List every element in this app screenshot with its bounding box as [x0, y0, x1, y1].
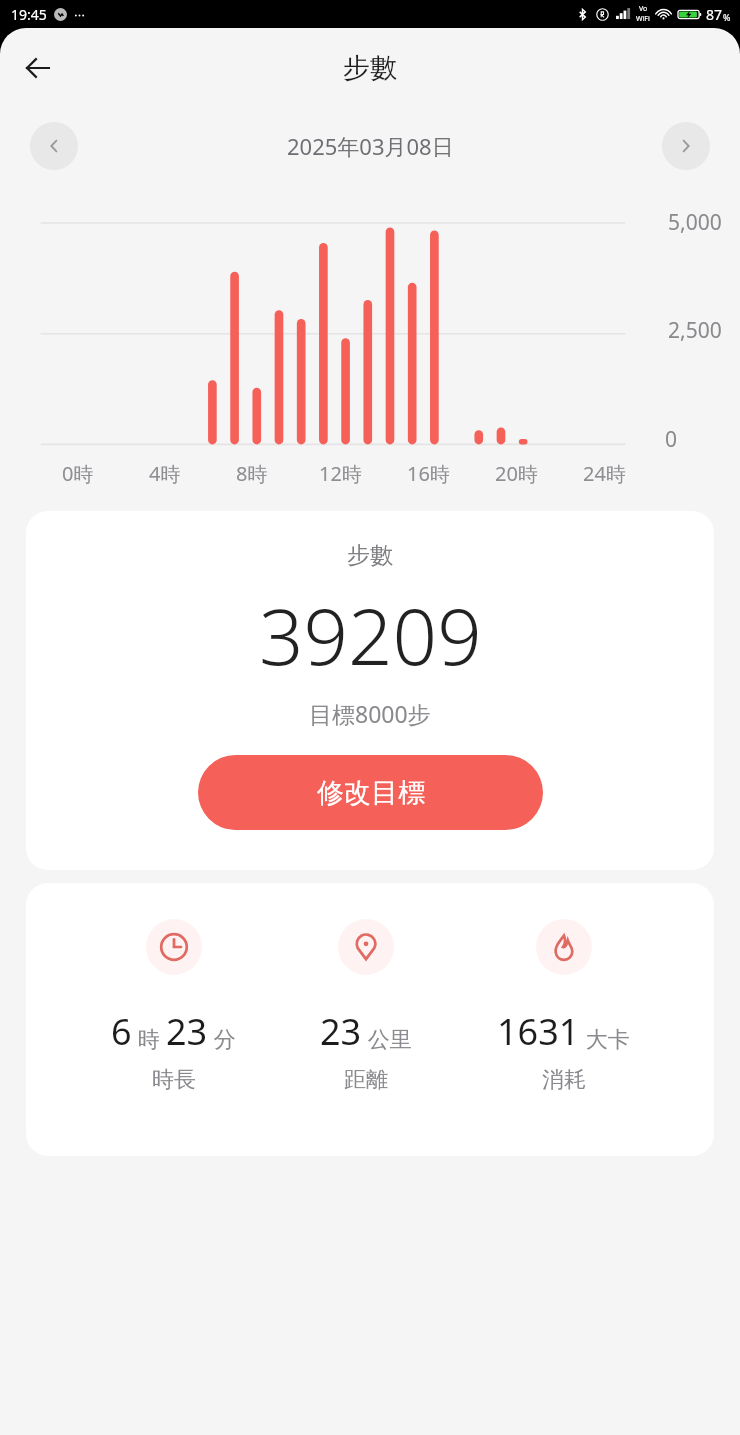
staticText: 16時 — [407, 460, 450, 487]
staticText: 4時 — [149, 460, 181, 487]
button[interactable]: Distance — [320, 919, 412, 1094]
staticText: 消耗 — [542, 1066, 586, 1094]
staticText: 8時 — [236, 460, 268, 487]
staticText: 時 — [132, 1023, 166, 1053]
staticText: 0時 — [62, 460, 94, 487]
staticText: 大卡 — [580, 1023, 630, 1053]
staticText: 6 — [111, 1007, 132, 1056]
staticText: 目標8000步 — [309, 698, 431, 729]
staticText: 39209 — [259, 582, 482, 688]
button[interactable]: Previous day — [30, 122, 78, 170]
staticText: 距離 — [344, 1066, 388, 1094]
other: Duration — [146, 919, 202, 975]
staticText: 23 — [320, 1007, 362, 1056]
staticText: 修改目標 — [317, 776, 425, 810]
other: Calories — [536, 919, 592, 975]
staticText: Vo — [639, 4, 648, 14]
staticText: 公里 — [362, 1023, 412, 1053]
button[interactable]: Calories — [497, 919, 630, 1094]
staticText: 1631 — [497, 1007, 580, 1056]
staticText: 2,500 — [668, 316, 722, 345]
staticText: 20時 — [495, 460, 538, 487]
staticText: 步數 — [343, 51, 397, 85]
staticText: 24時 — [583, 460, 626, 487]
button[interactable]: Next day — [662, 122, 710, 170]
button[interactable]: Back — [12, 42, 64, 94]
staticText: 5,000 — [668, 208, 722, 237]
button[interactable]: 修改目標 — [198, 755, 543, 830]
staticText: 23 — [166, 1007, 208, 1056]
staticText: 0 — [665, 425, 678, 454]
staticText: 2025年03月08日 — [287, 131, 454, 161]
button[interactable]: 步數 — [26, 511, 714, 870]
staticText: 分 — [208, 1023, 236, 1053]
staticText: 87 — [706, 5, 723, 24]
other: Distance — [338, 919, 394, 975]
staticText: 步數 — [347, 541, 393, 570]
button[interactable]: Duration — [111, 919, 236, 1094]
staticText: 19:45 — [11, 5, 47, 24]
staticText: 時長 — [152, 1066, 196, 1094]
staticText: 12時 — [319, 460, 362, 487]
staticText: % — [723, 11, 731, 23]
staticText: WiFi — [636, 14, 650, 24]
